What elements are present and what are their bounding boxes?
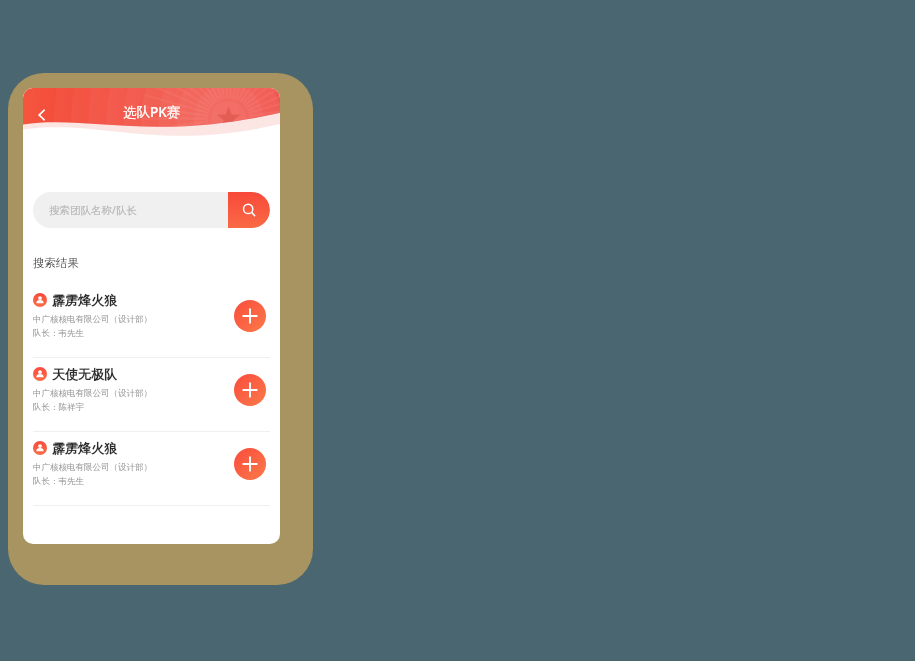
button[interactable]: Add team [234, 374, 266, 406]
staticText: 队长：韦先生 [33, 476, 84, 487]
staticText: 队长：陈祥宇 [33, 402, 84, 413]
staticText: 霹雳烽火狼 [52, 440, 117, 456]
staticText: 中广核核电有限公司（设计部） [33, 462, 152, 473]
button[interactable]: 霹雳烽火狼 [23, 432, 280, 506]
staticText: 选队PK赛 [123, 103, 181, 121]
staticText: 搜索团队名称/队长 [49, 203, 137, 217]
staticText: 天使无极队 [52, 366, 117, 382]
staticText: 中广核核电有限公司（设计部） [33, 388, 152, 399]
staticText: 搜索结果 [33, 256, 79, 270]
button[interactable]: 天使无极队 [23, 358, 280, 432]
button[interactable]: 霹雳烽火狼 [23, 284, 280, 358]
staticText: 霹雳烽火狼 [52, 292, 117, 308]
button[interactable]: Back [27, 100, 57, 130]
staticText: 队长：韦先生 [33, 328, 84, 339]
button[interactable]: Add team [234, 300, 266, 332]
staticText: 中广核核电有限公司（设计部） [33, 314, 152, 325]
button[interactable]: Add team [234, 448, 266, 480]
button[interactable]: Search [228, 192, 270, 228]
